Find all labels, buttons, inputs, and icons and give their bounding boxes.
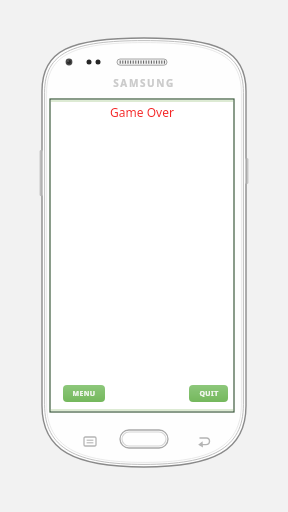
button[interactable]: Recent apps <box>76 430 102 452</box>
staticText: MENU <box>72 389 96 399</box>
button[interactable]: QUIT <box>189 385 228 402</box>
button[interactable]: Back <box>190 430 216 452</box>
button[interactable]: Home <box>120 430 168 448</box>
staticText: QUIT <box>199 389 219 399</box>
button[interactable]: MENU <box>63 385 105 402</box>
staticText: Game Over <box>51 104 233 122</box>
staticText: SAMSUNG <box>106 76 182 89</box>
